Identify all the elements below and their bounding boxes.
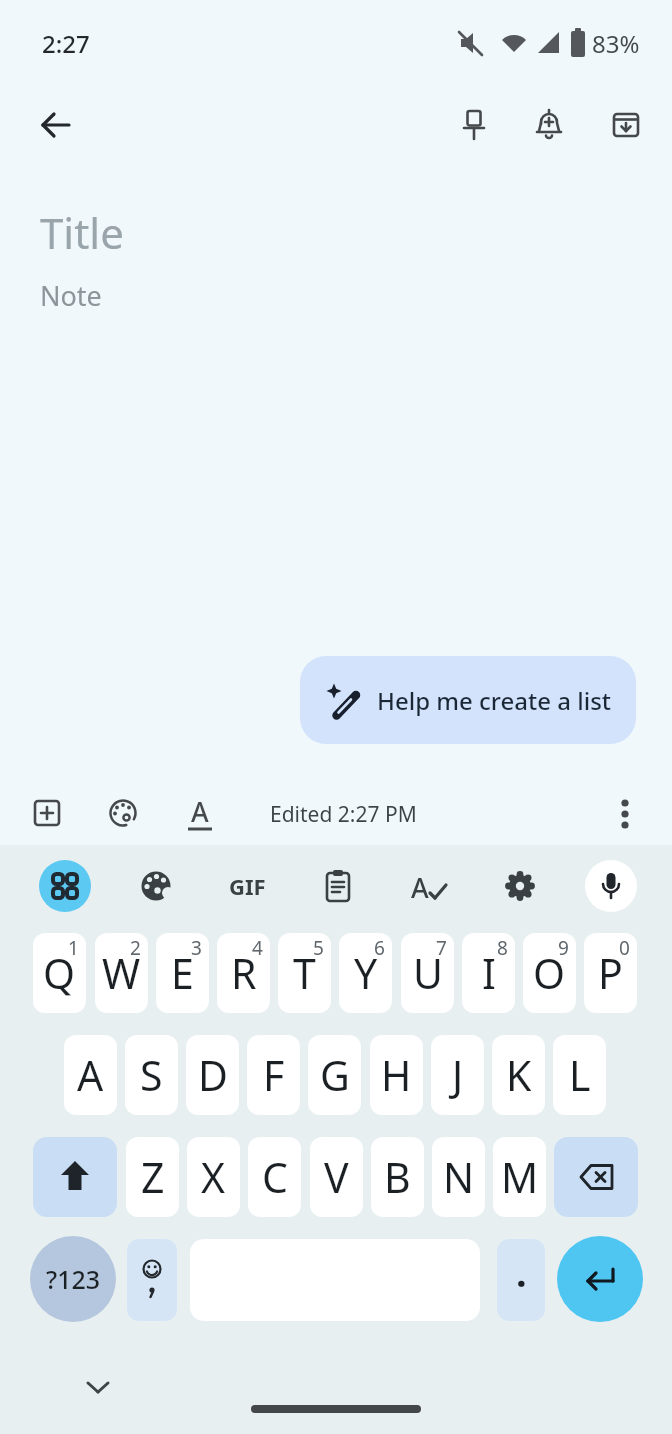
- staticText: I: [482, 945, 496, 1001]
- button[interactable]: A: [64, 1035, 117, 1115]
- button[interactable]: [609, 795, 641, 833]
- staticText: Q: [43, 945, 76, 1001]
- button[interactable]: [33, 1137, 117, 1217]
- button[interactable]: Help me create a list: [300, 656, 636, 744]
- staticText: J: [452, 1047, 464, 1103]
- staticText: V: [324, 1149, 349, 1205]
- button[interactable]: GIF: [221, 860, 273, 912]
- button[interactable]: I: [462, 933, 515, 1013]
- staticText: S: [140, 1047, 163, 1103]
- staticText: Y: [354, 945, 378, 1001]
- staticText: 5: [313, 935, 324, 961]
- button[interactable]: [554, 1137, 638, 1217]
- staticText: O: [533, 945, 566, 1001]
- button[interactable]: M: [493, 1137, 546, 1217]
- staticText: K: [506, 1047, 532, 1103]
- button[interactable]: W: [95, 933, 148, 1013]
- button[interactable]: S: [125, 1035, 178, 1115]
- button[interactable]: G: [308, 1035, 361, 1115]
- button[interactable]: .: [497, 1239, 545, 1321]
- button[interactable]: P: [584, 933, 637, 1013]
- staticText: T: [293, 945, 316, 1001]
- staticText: Help me create a list: [377, 684, 612, 717]
- button[interactable]: Z: [126, 1137, 179, 1217]
- button[interactable]: E: [156, 933, 209, 1013]
- staticText: H: [381, 1047, 412, 1103]
- button[interactable]: B: [371, 1137, 424, 1217]
- staticText: GIF: [229, 871, 266, 901]
- staticText: 4: [252, 935, 263, 961]
- staticText: G: [320, 1047, 350, 1103]
- button[interactable]: Y: [339, 933, 392, 1013]
- staticText: N: [443, 1149, 475, 1205]
- button[interactable]: [530, 106, 568, 144]
- staticText: F: [263, 1047, 285, 1103]
- button[interactable]: T: [278, 933, 331, 1013]
- button[interactable]: R: [217, 933, 270, 1013]
- staticText: L: [569, 1047, 591, 1103]
- button[interactable]: [585, 860, 637, 912]
- button[interactable]: A: [183, 796, 217, 832]
- button[interactable]: D: [186, 1035, 239, 1115]
- button[interactable]: [30, 796, 64, 830]
- button[interactable]: [557, 1236, 643, 1322]
- staticText: U: [413, 945, 443, 1001]
- staticText: 83%: [592, 27, 640, 60]
- staticText: Edited 2:27 PM: [270, 800, 417, 829]
- button[interactable]: A: [403, 860, 455, 912]
- button[interactable]: O: [523, 933, 576, 1013]
- button[interactable]: C: [248, 1137, 301, 1217]
- button[interactable]: N: [432, 1137, 485, 1217]
- button[interactable]: [130, 860, 182, 912]
- button[interactable]: [39, 860, 91, 912]
- staticText: W: [102, 945, 141, 1001]
- staticText: ?123: [46, 1262, 101, 1296]
- staticText: .: [516, 1246, 527, 1298]
- button[interactable]: [106, 796, 140, 830]
- button[interactable]: [36, 105, 76, 145]
- staticText: B: [384, 1149, 411, 1205]
- button[interactable]: F: [247, 1035, 300, 1115]
- button[interactable]: [607, 106, 645, 144]
- button[interactable]: L: [553, 1035, 606, 1115]
- staticText: 0: [619, 935, 630, 961]
- staticText: 1: [68, 935, 79, 961]
- button[interactable]: U: [401, 933, 454, 1013]
- staticText: P: [598, 945, 623, 1001]
- staticText: A: [191, 793, 209, 829]
- button[interactable]: X: [187, 1137, 240, 1217]
- button[interactable]: V: [310, 1137, 363, 1217]
- staticText: 3: [191, 935, 202, 961]
- button[interactable]: ?123: [30, 1236, 116, 1322]
- staticText: D: [198, 1047, 228, 1103]
- staticText: Title: [40, 204, 124, 261]
- button[interactable]: Q: [33, 933, 86, 1013]
- button[interactable]: H: [370, 1035, 423, 1115]
- staticText: E: [171, 945, 194, 1001]
- staticText: M: [501, 1149, 539, 1205]
- button[interactable]: K: [492, 1035, 545, 1115]
- staticText: 2:27: [42, 27, 90, 60]
- staticText: 6: [374, 935, 385, 961]
- staticText: A: [77, 1047, 104, 1103]
- staticText: C: [262, 1149, 288, 1205]
- staticText: Note: [40, 277, 102, 314]
- button[interactable]: [494, 860, 546, 912]
- staticText: Z: [141, 1149, 165, 1205]
- button[interactable]: J: [431, 1035, 484, 1115]
- staticText: 9: [558, 935, 569, 961]
- button[interactable]: [127, 1239, 177, 1321]
- staticText: 2: [130, 935, 141, 961]
- staticText: A: [411, 869, 429, 906]
- button[interactable]: [84, 1376, 112, 1398]
- staticText: 8: [497, 935, 508, 961]
- staticText: 7: [436, 935, 447, 961]
- staticText: X: [201, 1149, 226, 1205]
- staticText: R: [231, 945, 257, 1001]
- button[interactable]: [312, 860, 364, 912]
- button[interactable]: [455, 106, 493, 144]
